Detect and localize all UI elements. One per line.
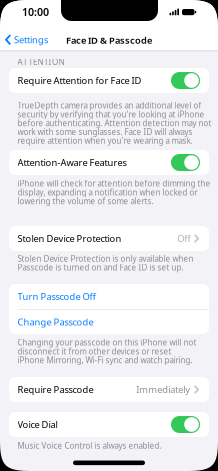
staticText: iPhone will check for attention before d… [17,178,210,189]
button[interactable]: Change Passcode [9,310,209,334]
staticText: before authenticating. Attention detecti… [17,118,211,128]
button[interactable] [171,416,200,433]
button[interactable]: Stolen Device Protection [9,226,209,251]
staticText: Passcode is turned on and Face ID is set… [17,262,183,273]
staticText: Voice Dial [17,418,57,431]
staticText: Turn Passcode Off [17,290,95,303]
staticText: Attention-Aware Features [17,156,126,169]
staticText: Changing your passcode on this iPhone wi… [17,337,196,348]
staticText: security by verifying that you're lookin… [17,109,204,120]
staticText: ATTENTION [17,56,64,67]
staticText: 10:00 [22,5,49,19]
staticText: work with some sunglasses. Face ID will … [17,127,192,137]
staticText: TrueDepth camera provides an additional … [17,100,201,111]
staticText: iPhone Mirroring, Wi-Fi sync and watch p… [17,355,192,365]
staticText: Settings [14,33,48,46]
staticText: Change Passcode [17,316,93,328]
button[interactable] [171,154,200,171]
staticText: Music Voice Control is always enabled. [17,440,161,451]
staticText: Off [177,232,190,245]
staticText: Require Attention for Face ID [17,74,141,87]
staticText: Stolen Device Protection [17,232,121,245]
staticText: lowering the volume of some alerts. [17,196,153,206]
button[interactable]: Require Passcode [9,377,209,402]
staticText: Stolen Device Protection is only availab… [17,253,193,264]
button[interactable] [171,72,200,89]
button[interactable]: Turn Passcode Off [9,284,209,309]
staticText: display, expanding a notification when l… [17,187,197,198]
staticText: Immediately [136,383,190,396]
staticText: disconnect it from other devices or rese… [17,346,171,357]
button[interactable]: Settings [5,33,48,46]
staticText: Require Passcode [17,383,93,396]
staticText: Face ID & Passcode [66,34,152,46]
staticText: require attention when you're wearing a … [17,135,192,146]
